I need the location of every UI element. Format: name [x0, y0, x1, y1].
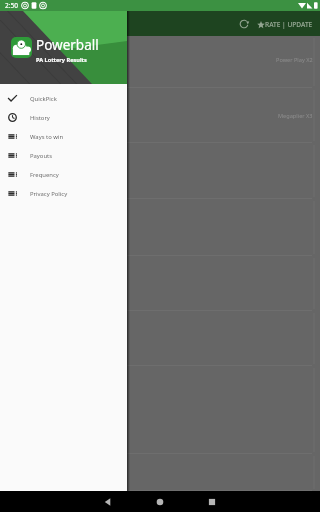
button[interactable]: Recent apps — [201, 491, 222, 512]
staticText: 2:50 — [5, 1, 18, 10]
staticText: History — [30, 114, 50, 122]
button[interactable]: History — [0, 108, 127, 127]
button[interactable]: Home — [149, 491, 170, 512]
button[interactable]: QuickPick — [0, 89, 127, 108]
button[interactable]: Payouts — [0, 146, 127, 165]
button[interactable]: Megaplier X3 — [0, 88, 320, 143]
staticText: PA Lottery Results — [36, 56, 87, 64]
staticText: Powerball — [36, 36, 99, 54]
staticText: Ways to win — [30, 133, 64, 141]
button[interactable] — [0, 311, 320, 366]
button[interactable] — [0, 199, 320, 256]
staticText: 2:50 — [5, 1, 18, 10]
button[interactable] — [0, 366, 320, 454]
button[interactable]: Back — [97, 491, 118, 512]
staticText: QuickPick — [30, 95, 57, 103]
staticText: Privacy Policy — [30, 190, 68, 198]
button[interactable]: RATE | UPDATE — [253, 16, 317, 33]
staticText: Payouts — [30, 152, 53, 160]
button[interactable]: Power Play X2 — [0, 36, 320, 88]
button[interactable]: Recent apps — [201, 491, 222, 512]
button[interactable]: Back — [97, 491, 118, 512]
button[interactable]: Ways to win — [0, 127, 127, 146]
button[interactable]: Privacy Policy — [0, 184, 127, 203]
button[interactable] — [0, 454, 320, 491]
button[interactable] — [0, 143, 320, 199]
staticText: RATE | UPDATE — [265, 20, 313, 29]
button[interactable]: Refresh — [235, 15, 253, 33]
button[interactable]: Home — [149, 491, 170, 512]
staticText: Frequency — [30, 171, 59, 179]
staticText: Megaplier X3 — [278, 112, 313, 120]
button[interactable] — [0, 256, 320, 311]
staticText: Power Play X2 — [276, 56, 313, 64]
button[interactable]: Frequency — [0, 165, 127, 184]
button[interactable]: Powerball app icon — [11, 37, 32, 58]
